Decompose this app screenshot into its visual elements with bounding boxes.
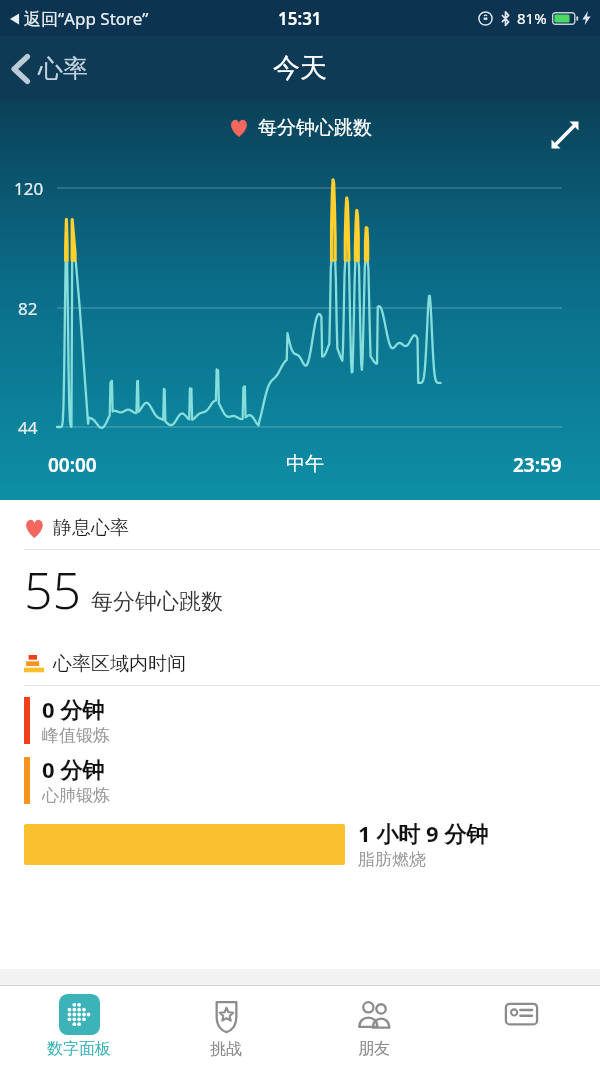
staticText: 0 分钟 (42, 694, 105, 724)
staticText: 82 (18, 297, 38, 320)
button[interactable]: 挑战 (158, 989, 294, 1064)
staticText: 挑战 (210, 1039, 242, 1059)
staticText: 23:59 (513, 452, 562, 478)
staticText: 静息心率 (53, 516, 129, 540)
button[interactable]: 1 小时 9 分钟 (0, 806, 600, 880)
button[interactable]: 数字面板 (11, 989, 147, 1064)
staticText: 脂肪燃烧 (358, 849, 426, 870)
staticText: 1 小时 9 分钟 (358, 818, 489, 848)
button[interactable]: 0 分钟 (0, 746, 600, 806)
staticText: 心率区域内时间 (53, 652, 186, 676)
staticText: 00:00 (48, 452, 97, 478)
staticText: 15:31 (278, 7, 322, 30)
button[interactable]: 55 (0, 550, 600, 634)
button[interactable]: 心率区域内时间 (0, 644, 600, 685)
staticText: 心肺锻炼 (42, 785, 110, 806)
staticText: 心率 (38, 53, 88, 84)
staticText: 0 分钟 (42, 754, 105, 784)
staticText: 55 (24, 556, 82, 624)
staticText: 44 (18, 416, 38, 439)
button[interactable]: 0 分钟 (0, 686, 600, 746)
staticText: 81% (517, 8, 547, 28)
button[interactable]: 朋友 (306, 989, 442, 1064)
button[interactable]: 静息心率 (0, 500, 600, 549)
staticText: 中午 (286, 452, 324, 476)
staticText: 朋友 (358, 1039, 390, 1059)
staticText: 数字面板 (47, 1039, 111, 1059)
staticText: 返回“App Store” (24, 7, 149, 30)
staticText: 每分钟心跳数 (91, 588, 223, 616)
staticText: 120 (14, 177, 44, 200)
staticText: 峰值锻炼 (42, 725, 110, 746)
staticText: 今天 (273, 51, 327, 85)
button[interactable]: 心率 (0, 45, 104, 92)
button[interactable]: Expand chart (542, 112, 588, 158)
staticText: 每分钟心跳数 (258, 116, 372, 140)
button[interactable]: 资讯 (453, 989, 589, 1064)
